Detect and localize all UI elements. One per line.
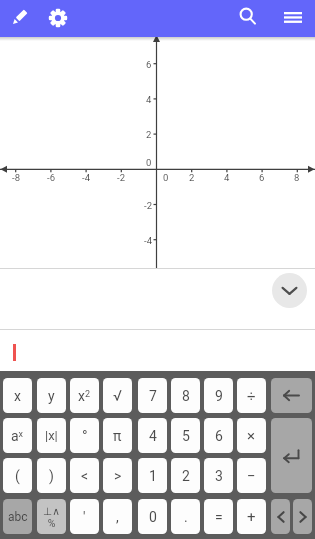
staticText: 1 bbox=[149, 468, 157, 484]
staticText: − bbox=[247, 467, 256, 485]
button[interactable]: √ bbox=[103, 378, 132, 413]
button[interactable]: 0 bbox=[138, 499, 167, 534]
button[interactable]: 8 bbox=[171, 378, 200, 413]
button[interactable]: 2 bbox=[171, 458, 200, 493]
button[interactable] bbox=[271, 378, 312, 413]
staticText: , bbox=[116, 509, 119, 525]
button[interactable]: > bbox=[103, 458, 132, 493]
staticText: 4 bbox=[224, 172, 230, 183]
button[interactable]: ⊥∧ % bbox=[37, 499, 66, 534]
button[interactable] bbox=[271, 418, 312, 493]
staticText: 0 bbox=[149, 509, 157, 525]
button[interactable]: 7 bbox=[138, 378, 167, 413]
button[interactable]: π bbox=[103, 418, 132, 453]
button[interactable]: 4 bbox=[138, 418, 167, 453]
staticText: ° bbox=[82, 427, 88, 445]
staticText: = bbox=[215, 509, 223, 525]
button[interactable]: ÷ bbox=[237, 378, 266, 413]
button[interactable] bbox=[43, 3, 73, 33]
button[interactable]: ) bbox=[37, 458, 66, 493]
staticText: ( bbox=[15, 468, 20, 484]
staticText: . bbox=[184, 509, 188, 525]
staticText: x2 bbox=[78, 388, 91, 404]
staticText: 9 bbox=[215, 388, 223, 404]
staticText: 7 bbox=[149, 388, 157, 404]
staticText: 6 bbox=[215, 428, 223, 444]
staticText: ' bbox=[83, 509, 86, 525]
button[interactable]: abc bbox=[3, 499, 32, 534]
staticText: 6 bbox=[259, 172, 265, 183]
staticText: -4 bbox=[144, 235, 152, 246]
staticText: 8 bbox=[294, 172, 300, 183]
button[interactable]: ' bbox=[70, 499, 99, 534]
staticText: ax bbox=[11, 428, 24, 444]
button[interactable] bbox=[271, 499, 290, 534]
staticText: 2 bbox=[189, 172, 195, 183]
button[interactable]: x2 bbox=[70, 378, 99, 413]
staticText: 4 bbox=[149, 428, 157, 444]
button[interactable]: ° bbox=[70, 418, 99, 453]
button[interactable]: ax bbox=[3, 418, 32, 453]
staticText: y bbox=[48, 388, 55, 404]
staticText: -8 bbox=[12, 172, 20, 183]
button[interactable]: , bbox=[103, 499, 132, 534]
button[interactable]: + bbox=[237, 499, 266, 534]
button[interactable] bbox=[272, 273, 307, 308]
staticText: ÷ bbox=[247, 387, 256, 405]
staticText: x bbox=[14, 388, 21, 404]
button[interactable] bbox=[4, 3, 34, 33]
button[interactable]: |x| bbox=[37, 418, 66, 453]
staticText: 2 bbox=[146, 129, 152, 140]
staticText: ) bbox=[49, 468, 54, 484]
button[interactable] bbox=[293, 499, 312, 534]
staticText: 3 bbox=[215, 468, 223, 484]
button[interactable]: < bbox=[70, 458, 99, 493]
button[interactable]: 9 bbox=[204, 378, 233, 413]
staticText: |x| bbox=[45, 428, 58, 443]
staticText: 6 bbox=[146, 59, 152, 70]
staticText: -2 bbox=[144, 200, 152, 211]
staticText: 0 bbox=[163, 172, 169, 183]
staticText: × bbox=[247, 427, 256, 445]
button[interactable]: = bbox=[204, 499, 233, 534]
button[interactable]: 3 bbox=[204, 458, 233, 493]
staticText: √ bbox=[113, 387, 122, 405]
button[interactable]: x bbox=[3, 378, 32, 413]
button[interactable]: y bbox=[37, 378, 66, 413]
button[interactable]: × bbox=[237, 418, 266, 453]
staticText: 8 bbox=[182, 388, 190, 404]
button[interactable] bbox=[277, 2, 309, 32]
button[interactable]: − bbox=[237, 458, 266, 493]
staticText: + bbox=[247, 508, 256, 526]
staticText: 4 bbox=[146, 94, 152, 105]
staticText: -2 bbox=[117, 172, 125, 183]
button[interactable]: . bbox=[171, 499, 200, 534]
staticText: π bbox=[113, 428, 122, 444]
button[interactable]: 5 bbox=[171, 418, 200, 453]
staticText: ⊥∧ % bbox=[43, 505, 60, 529]
button[interactable]: ( bbox=[3, 458, 32, 493]
staticText: 5 bbox=[182, 428, 190, 444]
staticText: 2 bbox=[182, 468, 190, 484]
staticText: -4 bbox=[82, 172, 90, 183]
staticText: -6 bbox=[47, 172, 55, 183]
button[interactable]: 1 bbox=[138, 458, 167, 493]
staticText: abc bbox=[8, 510, 28, 524]
button[interactable]: 6 bbox=[204, 418, 233, 453]
button[interactable] bbox=[0, 330, 315, 371]
staticText: 0 bbox=[146, 157, 152, 168]
button[interactable] bbox=[233, 2, 263, 32]
staticText: > bbox=[114, 468, 122, 484]
staticText: < bbox=[81, 468, 89, 484]
